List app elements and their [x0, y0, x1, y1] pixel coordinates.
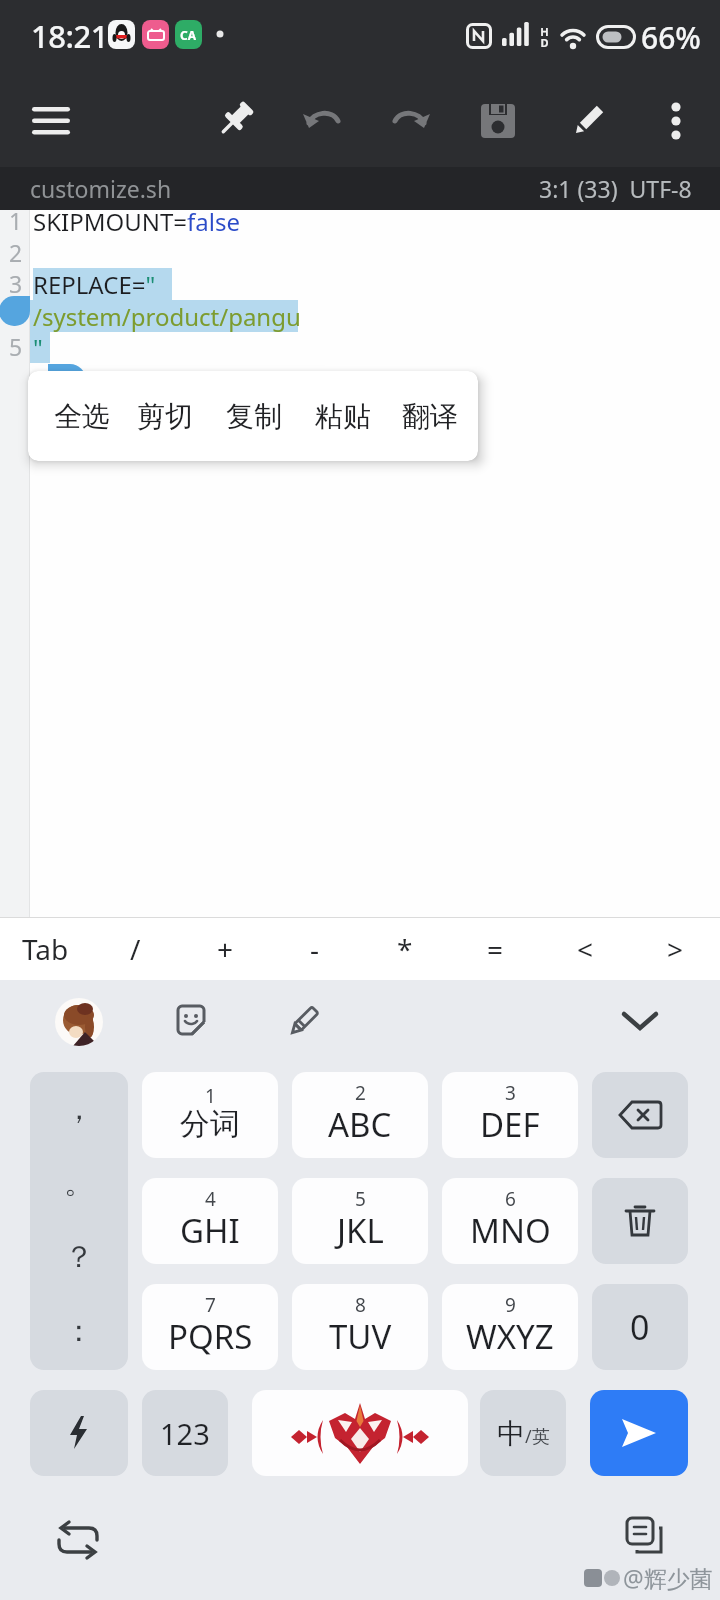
staticText: TUV: [329, 1314, 392, 1359]
button[interactable]: 4: [142, 1178, 278, 1264]
staticText: /: [130, 930, 141, 968]
button[interactable]: [279, 998, 327, 1046]
button[interactable]: =: [450, 917, 540, 980]
button[interactable]: [592, 1178, 688, 1264]
button[interactable]: [592, 1072, 688, 1158]
button[interactable]: [55, 998, 103, 1046]
button[interactable]: 2: [292, 1072, 428, 1158]
staticText: 4: [9, 300, 23, 331]
staticText: 66%: [641, 17, 701, 58]
button[interactable]: 1: [142, 1072, 278, 1158]
staticText: +: [217, 930, 234, 968]
staticText: 2: [355, 1080, 366, 1106]
staticText: REPLACE=": [33, 268, 156, 301]
staticText: DEF: [480, 1102, 540, 1147]
button[interactable]: <: [540, 917, 630, 980]
staticText: =: [487, 930, 504, 968]
staticText: 9: [505, 1292, 516, 1318]
staticText: /system/product/pangu: [33, 300, 301, 333]
staticText: 翻译: [402, 399, 458, 434]
staticText: ？: [64, 1238, 94, 1276]
button[interactable]: 123: [142, 1390, 228, 1476]
button[interactable]: Tab: [0, 917, 90, 980]
staticText: 5: [9, 331, 23, 362]
staticText: ": [33, 331, 43, 364]
staticText: 8: [355, 1292, 366, 1318]
staticText: 1: [205, 1083, 216, 1109]
staticText: 中/英: [497, 1416, 550, 1451]
button[interactable]: [590, 1390, 688, 1476]
button[interactable]: [252, 1390, 468, 1476]
staticText: customize.sh: [30, 173, 172, 204]
button[interactable]: 中/英: [480, 1390, 566, 1476]
button[interactable]: [21, 91, 81, 151]
staticText: *: [397, 930, 413, 968]
button[interactable]: 3: [442, 1072, 578, 1158]
staticText: CA: [180, 27, 197, 43]
staticText: 3:1 (33) UTF-8: [539, 173, 692, 204]
staticText: 粘贴: [315, 399, 371, 434]
button[interactable]: +: [180, 917, 270, 980]
button[interactable]: [468, 91, 528, 151]
button[interactable]: 9: [442, 1284, 578, 1370]
staticText: 复制: [226, 399, 282, 434]
staticText: 0: [630, 1304, 650, 1350]
staticText: 分词: [180, 1105, 240, 1143]
button[interactable]: [30, 1390, 128, 1476]
staticText: >: [667, 930, 684, 968]
button[interactable]: ，: [30, 1072, 128, 1370]
button[interactable]: 7: [142, 1284, 278, 1370]
button[interactable]: 6: [442, 1178, 578, 1264]
button[interactable]: 0: [592, 1284, 688, 1370]
button[interactable]: [168, 998, 216, 1046]
button[interactable]: *: [360, 917, 450, 980]
button[interactable]: [646, 91, 706, 151]
staticText: PQRS: [168, 1314, 253, 1359]
staticText: H D: [540, 24, 549, 51]
button[interactable]: 复制: [214, 371, 294, 461]
staticText: 。: [64, 1164, 94, 1202]
button[interactable]: [293, 91, 353, 151]
staticText: ABC: [328, 1102, 392, 1147]
staticText: -: [310, 930, 320, 968]
staticText: 3: [505, 1080, 516, 1106]
button[interactable]: 翻译: [390, 371, 470, 461]
button[interactable]: 粘贴: [303, 371, 383, 461]
staticText: SKIPMOUNT=false: [33, 205, 240, 238]
button[interactable]: 5: [292, 1178, 428, 1264]
button[interactable]: 全选: [42, 371, 122, 461]
staticText: 18:21: [31, 15, 108, 57]
button[interactable]: 8: [292, 1284, 428, 1370]
staticText: <: [577, 930, 594, 968]
button[interactable]: [615, 1506, 675, 1566]
staticText: 全选: [54, 399, 110, 434]
staticText: 7: [205, 1292, 216, 1318]
staticText: GHI: [180, 1208, 240, 1253]
staticText: 6: [505, 1186, 516, 1212]
staticText: ，: [64, 1090, 94, 1128]
staticText: 剪切: [137, 399, 193, 434]
staticText: 3: [9, 268, 23, 299]
staticText: 2: [9, 237, 23, 268]
button[interactable]: 剪切: [125, 371, 205, 461]
staticText: @辉少菌: [623, 1562, 713, 1593]
staticText: 1: [9, 205, 23, 236]
staticText: Tab: [22, 930, 69, 968]
staticText: JKL: [337, 1208, 384, 1253]
staticText: 123: [160, 1414, 210, 1453]
staticText: 5: [355, 1186, 366, 1212]
button[interactable]: >: [630, 917, 720, 980]
button[interactable]: [206, 91, 266, 151]
staticText: MNO: [470, 1208, 551, 1253]
button[interactable]: [48, 1510, 108, 1570]
button[interactable]: /: [90, 917, 180, 980]
button[interactable]: [558, 91, 618, 151]
button[interactable]: [380, 91, 440, 151]
staticText: WXYZ: [466, 1314, 554, 1359]
staticText: ：: [64, 1312, 94, 1350]
staticText: 4: [205, 1186, 216, 1212]
button[interactable]: [616, 998, 664, 1046]
button[interactable]: -: [270, 917, 360, 980]
